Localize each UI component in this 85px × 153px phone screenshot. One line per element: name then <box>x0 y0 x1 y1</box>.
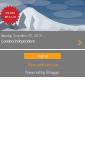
staticText: View web version <box>27 62 57 67</box>
staticText: Powered by Blogger <box>25 69 60 75</box>
staticText: London Independent <box>1 38 34 44</box>
button[interactable]: Saturday, December 30, 2016 <box>0 31 85 49</box>
staticText: Saturday, December 30, 2016 <box>1 34 42 38</box>
button[interactable]: View web version <box>27 62 57 67</box>
staticText: Home <box>37 53 48 59</box>
staticText: SERVICES <box>4 15 15 18</box>
button[interactable]: Home <box>24 53 61 59</box>
staticText: THE BEST <box>5 11 15 15</box>
